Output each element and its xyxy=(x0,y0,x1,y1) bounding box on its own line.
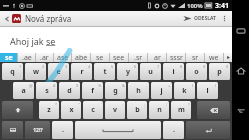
staticText: 6 xyxy=(134,64,137,69)
staticText: j xyxy=(160,86,163,96)
button[interactable]: More suggestions xyxy=(224,53,232,62)
staticText: . xyxy=(62,125,64,135)
button[interactable]: g xyxy=(105,82,126,99)
staticText: v xyxy=(113,105,117,115)
staticText: 2 xyxy=(42,64,45,69)
button[interactable]: .ar xyxy=(36,53,53,62)
staticText: 100% xyxy=(187,2,203,10)
staticText: Nová zpráva xyxy=(25,13,72,24)
staticText: d xyxy=(67,86,72,96)
button[interactable]: ODESLAT xyxy=(181,11,218,26)
button[interactable] xyxy=(2,101,33,119)
staticText: w xyxy=(33,67,39,77)
button[interactable]: q xyxy=(2,63,23,80)
button[interactable]: d xyxy=(59,82,80,99)
button[interactable]: p xyxy=(209,63,230,80)
staticText: x xyxy=(69,105,74,115)
button[interactable]: f xyxy=(82,82,103,99)
button[interactable]: a xyxy=(13,82,34,99)
staticText: c xyxy=(91,105,95,115)
staticText: ( xyxy=(192,83,194,88)
button[interactable]: l xyxy=(197,82,218,99)
button[interactable]: se xyxy=(91,53,109,62)
staticText: 4 xyxy=(88,64,91,69)
staticText: + xyxy=(168,83,171,88)
button[interactable]: sssr xyxy=(167,53,185,62)
button[interactable]: c xyxy=(83,101,103,119)
button[interactable]: k xyxy=(174,82,195,99)
staticText: 5 xyxy=(111,64,114,69)
button[interactable]: m xyxy=(171,101,191,119)
staticText: sssr xyxy=(170,53,183,62)
button[interactable]: 12!? xyxy=(25,121,50,139)
staticText: : xyxy=(122,102,124,107)
button[interactable]: Ahoj jak xyxy=(0,27,232,53)
staticText: se xyxy=(46,35,56,47)
staticText: y xyxy=(126,67,130,77)
button[interactable] xyxy=(75,121,161,139)
button[interactable]: Recents xyxy=(232,22,249,39)
staticText: ? xyxy=(188,102,190,107)
staticText: f xyxy=(91,86,94,96)
staticText: # xyxy=(53,83,56,88)
button[interactable]: we xyxy=(205,53,223,62)
staticText: see xyxy=(113,53,125,62)
button[interactable]: y xyxy=(117,63,138,80)
button[interactable] xyxy=(197,101,230,119)
staticText: 1 xyxy=(19,64,22,69)
staticText: h xyxy=(136,86,141,96)
button[interactable]: . xyxy=(163,121,184,139)
staticText: we xyxy=(209,53,219,62)
staticText: . xyxy=(173,125,175,135)
button[interactable]: b xyxy=(127,101,147,119)
button[interactable]: v xyxy=(105,101,125,119)
button[interactable]: ar xyxy=(148,53,166,62)
staticText: " xyxy=(78,102,80,107)
button[interactable]: More options xyxy=(220,11,229,26)
button[interactable]: . xyxy=(52,121,73,139)
staticText: .ae xyxy=(22,53,32,62)
staticText: 3:41 xyxy=(215,1,229,11)
button[interactable]: s xyxy=(36,82,57,99)
staticText: t xyxy=(103,67,107,77)
staticText: l xyxy=(206,86,209,96)
staticText: ) xyxy=(215,83,217,88)
button[interactable]: r xyxy=(71,63,92,80)
button[interactable]: j xyxy=(151,82,172,99)
button[interactable]: o xyxy=(186,63,207,80)
button[interactable]: w xyxy=(25,63,46,80)
staticText: s xyxy=(45,86,49,96)
staticText: 3 xyxy=(65,64,68,69)
staticText: * xyxy=(55,102,58,107)
button[interactable]: n xyxy=(149,101,169,119)
button[interactable]: z xyxy=(39,101,59,119)
button[interactable]: .ae xyxy=(18,53,35,62)
button[interactable] xyxy=(2,121,23,139)
staticText: ar xyxy=(154,53,161,62)
staticText: u xyxy=(148,67,153,77)
staticText: abe xyxy=(75,53,88,62)
staticText: e xyxy=(56,67,61,77)
button[interactable]: see xyxy=(110,53,128,62)
button[interactable]: u xyxy=(140,63,161,80)
staticText: 7 xyxy=(157,64,160,69)
button[interactable]: Home xyxy=(232,62,249,79)
button[interactable]: Back xyxy=(3,11,22,26)
button[interactable]: ase xyxy=(54,53,71,62)
button[interactable]: x xyxy=(61,101,81,119)
button[interactable]: .sr xyxy=(129,53,147,62)
button[interactable]: h xyxy=(128,82,149,99)
button[interactable]: sr xyxy=(186,53,204,62)
staticText: .sr xyxy=(134,53,143,62)
button[interactable]: t xyxy=(94,63,115,80)
button[interactable]: Back xyxy=(232,102,249,119)
staticText: sr xyxy=(192,53,199,62)
button[interactable] xyxy=(186,121,230,139)
staticText: b xyxy=(135,105,140,115)
button[interactable]: i xyxy=(163,63,184,80)
staticText: ! xyxy=(166,102,168,107)
staticText: - xyxy=(146,83,148,88)
button[interactable]: e xyxy=(48,63,69,80)
button[interactable]: abe xyxy=(72,53,90,62)
button[interactable]: se xyxy=(0,53,17,62)
